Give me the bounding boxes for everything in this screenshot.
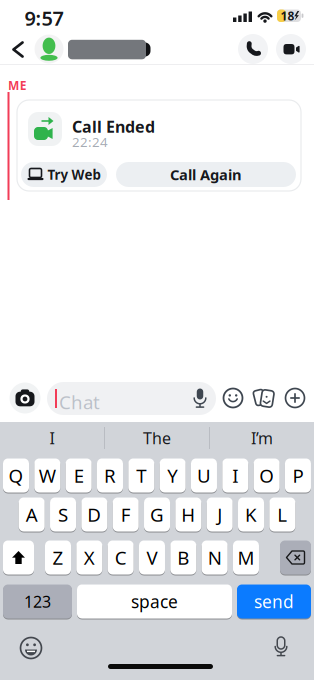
staticText: 18 xyxy=(280,8,294,24)
staticText: send xyxy=(254,590,294,613)
button[interactable]: I’m xyxy=(210,426,314,450)
button[interactable]: K xyxy=(238,497,264,532)
button[interactable]: Try Web xyxy=(21,162,107,187)
staticText: W xyxy=(39,463,56,488)
staticText: Call Ended xyxy=(72,116,155,137)
staticText: I’m xyxy=(251,427,273,449)
button[interactable]: Video call xyxy=(276,34,306,64)
staticText: T xyxy=(136,463,146,488)
staticText: G xyxy=(150,502,164,527)
staticText: S xyxy=(58,502,68,527)
button[interactable]: F xyxy=(113,497,139,532)
staticText: Chat xyxy=(59,389,100,414)
button[interactable]: Q xyxy=(3,458,29,493)
staticText: space xyxy=(131,590,178,613)
staticText: 9:57 xyxy=(24,5,63,31)
button[interactable]: Y xyxy=(160,458,186,493)
staticText: M xyxy=(237,545,254,570)
staticText: D xyxy=(87,502,101,527)
staticText: Q xyxy=(8,463,23,488)
button[interactable]: G xyxy=(144,497,170,532)
staticText: Try Web xyxy=(47,166,100,183)
staticText: E xyxy=(74,463,84,488)
button[interactable]: O xyxy=(254,458,280,493)
button[interactable]: Voice call xyxy=(238,34,268,64)
button[interactable]: space xyxy=(77,584,232,619)
button[interactable]: send xyxy=(237,584,311,619)
staticText: R xyxy=(104,463,116,488)
staticText: N xyxy=(208,545,222,570)
button[interactable]: S xyxy=(50,497,76,532)
button[interactable]: U xyxy=(191,458,217,493)
staticText: B xyxy=(177,545,189,570)
button[interactable]: J xyxy=(207,497,233,532)
staticText: F xyxy=(121,502,131,527)
button[interactable]: V xyxy=(139,540,165,575)
button[interactable]: I xyxy=(0,426,104,450)
staticText: K xyxy=(245,502,257,527)
staticText: Z xyxy=(52,545,63,570)
button[interactable]: B xyxy=(170,540,196,575)
staticText: O xyxy=(259,463,274,488)
button[interactable]: Shift xyxy=(3,540,34,575)
staticText: 22:24 xyxy=(72,133,108,151)
button[interactable]: N xyxy=(202,540,228,575)
button[interactable]: Emoji keyboard xyxy=(19,636,43,660)
button[interactable]: Camera xyxy=(9,382,40,413)
button[interactable]: H xyxy=(175,497,201,532)
staticText: ME xyxy=(8,77,27,93)
button[interactable]: Profile xyxy=(34,34,152,64)
staticText: H xyxy=(181,502,195,527)
staticText: L xyxy=(277,502,287,527)
button[interactable]: A xyxy=(19,497,45,532)
staticText: The xyxy=(143,427,171,449)
button[interactable]: T xyxy=(128,458,154,493)
staticText: I xyxy=(49,427,54,449)
button[interactable]: M xyxy=(233,540,259,575)
button[interactable]: Back xyxy=(6,37,30,61)
button[interactable]: The xyxy=(105,426,209,450)
button[interactable]: Dictation xyxy=(274,637,288,657)
staticText: Y xyxy=(167,463,178,488)
button[interactable]: Call Again xyxy=(116,162,296,187)
button[interactable]: D xyxy=(81,497,107,532)
staticText: P xyxy=(292,463,303,488)
button[interactable]: Chat xyxy=(47,382,216,415)
button[interactable]: More xyxy=(284,387,306,409)
button[interactable]: P xyxy=(285,458,311,493)
button[interactable]: Z xyxy=(45,540,71,575)
button[interactable]: 123 xyxy=(3,584,72,619)
staticText: I xyxy=(232,463,238,488)
staticText: X xyxy=(84,545,95,570)
staticText: 123 xyxy=(24,591,51,612)
button[interactable]: W xyxy=(34,458,60,493)
button[interactable]: Delete xyxy=(280,540,311,575)
button[interactable]: R xyxy=(97,458,123,493)
button[interactable]: X xyxy=(76,540,102,575)
button[interactable]: Stickers xyxy=(253,387,275,409)
staticText: A xyxy=(26,502,38,527)
button[interactable]: C xyxy=(108,540,134,575)
staticText: Call Again xyxy=(170,165,242,184)
staticText: V xyxy=(146,545,157,570)
staticText: J xyxy=(217,502,222,527)
button[interactable]: I xyxy=(222,458,248,493)
button[interactable]: Emoji xyxy=(222,387,244,409)
button[interactable]: E xyxy=(66,458,92,493)
staticText: U xyxy=(197,463,211,488)
staticText: C xyxy=(115,545,127,570)
button[interactable]: L xyxy=(269,497,295,532)
